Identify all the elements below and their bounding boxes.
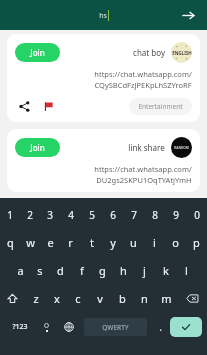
staticText: d xyxy=(57,263,64,278)
button[interactable]: g xyxy=(92,256,113,284)
button[interactable]: QWERTY xyxy=(84,318,147,336)
button[interactable]: y xyxy=(102,228,123,256)
button[interactable]: m xyxy=(155,284,177,312)
staticText: ENGLISH xyxy=(172,50,192,56)
button[interactable]: Change language xyxy=(57,312,81,342)
button[interactable]: u xyxy=(123,228,144,256)
button[interactable]: j xyxy=(134,256,155,284)
button[interactable]: 2 xyxy=(20,201,40,228)
button[interactable]: o xyxy=(165,228,186,256)
staticText: Join xyxy=(30,47,45,58)
staticText: z xyxy=(33,291,39,306)
staticText: chat boy xyxy=(133,47,165,58)
button[interactable]: n xyxy=(133,284,155,312)
button[interactable]: Join xyxy=(15,43,60,62)
staticText: g xyxy=(99,263,106,278)
staticText: https://chat.whatsapp.com/ xyxy=(94,69,192,79)
button[interactable]: Join xyxy=(15,138,60,157)
button[interactable]: 9 xyxy=(165,201,186,228)
staticText: 6 xyxy=(110,208,116,222)
button[interactable]: h xyxy=(113,256,134,284)
button[interactable]: i xyxy=(144,228,165,256)
button[interactable]: 0 xyxy=(186,201,207,228)
staticText: 9 xyxy=(173,208,179,222)
staticText: ?123 xyxy=(12,322,28,332)
staticText: CQySBCdFzJPEKpLhSZYroRF xyxy=(94,80,192,90)
button[interactable]: 6 xyxy=(102,201,123,228)
button[interactable]: r xyxy=(60,228,81,256)
button[interactable]: 3 xyxy=(40,201,60,228)
button[interactable]: Join xyxy=(7,129,200,192)
button[interactable]: x xyxy=(46,284,67,312)
button[interactable]: s xyxy=(30,256,50,284)
button[interactable]: 7 xyxy=(123,201,144,228)
button[interactable]: 8 xyxy=(144,201,165,228)
button[interactable]: Share xyxy=(15,97,33,115)
button[interactable]: p xyxy=(186,228,207,256)
staticText: 0 xyxy=(194,208,200,222)
staticText: n xyxy=(141,291,148,306)
staticText: 3 xyxy=(47,208,53,222)
staticText: hs xyxy=(99,11,107,21)
staticText: w xyxy=(26,235,35,250)
button[interactable]: 4 xyxy=(60,201,81,228)
staticText: q xyxy=(7,235,14,250)
staticText: 4 xyxy=(68,208,74,222)
button[interactable]: t xyxy=(81,228,102,256)
staticText: j xyxy=(143,263,146,278)
staticText: 5 xyxy=(89,208,95,222)
staticText: DU2gs2SKPU1OqTYAtjYmH xyxy=(96,175,192,185)
staticText: m xyxy=(161,291,172,306)
button[interactable]: e xyxy=(40,228,60,256)
button[interactable]: Enter xyxy=(170,317,202,337)
staticText: u xyxy=(130,235,137,250)
button[interactable]: Search xyxy=(178,5,198,25)
button[interactable]: Report xyxy=(39,97,57,115)
staticText: RANDOM xyxy=(174,146,189,150)
button[interactable]: z xyxy=(25,284,46,312)
button[interactable]: q xyxy=(0,228,20,256)
staticText: x xyxy=(54,291,60,306)
button[interactable]: f xyxy=(71,256,92,284)
staticText: 1 xyxy=(7,208,13,222)
button[interactable]: d xyxy=(50,256,71,284)
staticText: v xyxy=(97,291,103,306)
staticText: . xyxy=(159,320,162,334)
staticText: a xyxy=(17,263,24,278)
button[interactable]: Join xyxy=(7,34,200,122)
staticText: QWERTY xyxy=(102,323,129,332)
staticText: p xyxy=(193,235,200,250)
staticText: e xyxy=(47,235,54,250)
button[interactable]: v xyxy=(89,284,111,312)
button[interactable]: Shift xyxy=(0,284,25,312)
staticText: link share xyxy=(128,142,165,153)
button[interactable]: b xyxy=(111,284,133,312)
staticText: f xyxy=(80,263,84,278)
staticText: k xyxy=(163,263,169,278)
staticText: y xyxy=(110,235,116,250)
staticText: i xyxy=(153,235,156,250)
button[interactable]: l xyxy=(176,256,197,284)
button[interactable]: 1 xyxy=(0,201,20,228)
staticText: o xyxy=(172,235,179,250)
button[interactable]: Entertainment xyxy=(129,98,192,115)
button[interactable]: c xyxy=(67,284,89,312)
button[interactable]: Backspace xyxy=(177,284,207,312)
staticText: c xyxy=(75,291,81,306)
button[interactable]: a xyxy=(10,256,30,284)
staticText: 2 xyxy=(27,208,33,222)
staticText: Join xyxy=(30,142,45,153)
staticText: t xyxy=(90,235,94,250)
button[interactable]: Emoji xyxy=(35,312,57,342)
staticText: b xyxy=(119,291,126,306)
staticText: r xyxy=(68,235,73,250)
staticText: 8 xyxy=(152,208,158,222)
button[interactable]: w xyxy=(20,228,40,256)
button[interactable]: . xyxy=(150,312,170,342)
button[interactable]: 5 xyxy=(81,201,102,228)
button[interactable]: ?123 xyxy=(5,312,35,342)
button[interactable]: k xyxy=(155,256,176,284)
staticText: 7 xyxy=(131,208,137,222)
staticText: l xyxy=(185,263,188,278)
staticText: Entertainment xyxy=(138,102,183,111)
